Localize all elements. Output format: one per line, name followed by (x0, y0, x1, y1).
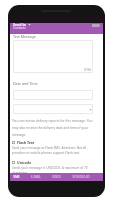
staticText: Date and Time (13, 81, 38, 86)
staticText: Contacts (13, 26, 26, 30)
staticText: Flash Text (17, 140, 35, 145)
staticText: VOICE (52, 175, 61, 179)
button[interactable]: Send to (10, 23, 103, 34)
staticText: SCHEDULED (72, 175, 90, 179)
staticText: Unicode (17, 160, 32, 165)
button[interactable]: VOICE (52, 173, 61, 181)
staticText: SMS (13, 175, 20, 179)
button[interactable]: E-MAIL (31, 173, 41, 181)
button[interactable] (13, 104, 93, 114)
staticText: You can receive delivery reports for thi… (12, 119, 98, 137)
staticText: 0/160 (84, 68, 92, 72)
staticText: Sends your message in UNICODE. A maximum… (12, 166, 98, 175)
button[interactable]: Send message (92, 24, 100, 28)
button[interactable]: Unicode (12, 160, 98, 175)
staticText: Send your message as Flash SMS. Attentio… (12, 146, 98, 155)
staticText: SEND (92, 24, 100, 28)
button[interactable]: Flash Text (12, 140, 98, 155)
staticText: Text Message (13, 34, 36, 39)
staticText: Send to (13, 22, 27, 27)
button[interactable] (13, 90, 93, 100)
button[interactable]: 0/160 (13, 40, 93, 73)
staticText: E-MAIL (31, 175, 41, 179)
button[interactable]: SMS (13, 173, 20, 181)
button[interactable]: SCHEDULED (72, 173, 90, 181)
